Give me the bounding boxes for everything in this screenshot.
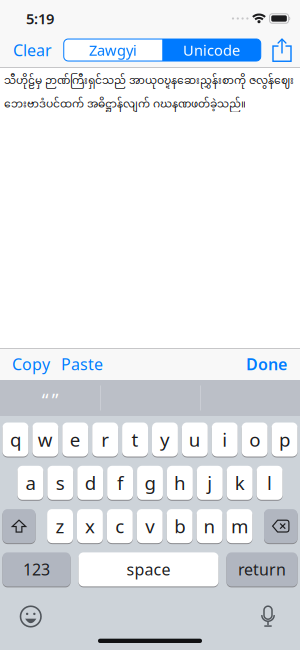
button[interactable]: d [77,465,103,500]
button[interactable]: z [47,509,73,544]
button[interactable]: Emoji [0,606,41,627]
button[interactable]: Copy [0,353,50,375]
button[interactable]: “ ” [0,380,100,416]
staticText: c [115,514,124,538]
staticText: m [231,514,248,538]
button[interactable]: f [107,465,133,500]
button[interactable]: k [227,465,253,500]
button[interactable]: p [272,422,297,457]
staticText: d [85,470,96,495]
button[interactable]: u [182,422,208,457]
staticText: o [249,427,260,452]
button[interactable]: o [242,422,268,457]
staticText: Done [246,353,287,375]
button[interactable]: s [47,465,73,500]
staticText: Clear [13,39,52,61]
staticText: Zawgyi [89,40,137,60]
button[interactable]: j [197,465,223,500]
button[interactable]: q [2,422,28,457]
button[interactable]: e [62,422,88,457]
button[interactable]: Clear [0,39,52,61]
button[interactable]: w [32,422,58,457]
staticText: f [117,470,123,495]
button[interactable]: l [257,465,282,500]
button[interactable]: Numbers [2,552,70,587]
button[interactable]: Unicode [162,39,261,61]
button[interactable]: space [78,552,218,587]
staticText: z [55,514,64,538]
button[interactable]: Done [246,353,300,375]
staticText: i [222,427,227,452]
button[interactable]: m [226,509,252,544]
staticText: Unicode [183,40,240,60]
button[interactable]: g [137,465,163,500]
staticText: u [189,427,201,452]
staticText: h [174,470,186,495]
button[interactable]: b [167,509,193,544]
button[interactable]: t [122,422,148,457]
button[interactable]: Paste [50,353,103,375]
staticText: x [85,514,95,538]
button[interactable]: Shift [2,509,35,544]
button[interactable]: y [152,422,178,457]
button[interactable]: Zawgyi [64,39,162,61]
button[interactable]: c [107,509,133,544]
button[interactable]: a [17,465,43,500]
staticText: 5:19 [26,9,54,28]
staticText: j [207,470,212,495]
button[interactable]: h [167,465,193,500]
button[interactable]: i [212,422,238,457]
button[interactable]: r [92,422,118,457]
staticText: v [145,514,154,538]
staticText: space [126,559,170,580]
button[interactable]: Delete [264,509,297,544]
staticText: k [235,470,245,495]
staticText: g [144,470,155,495]
staticText: Paste [61,353,103,375]
button[interactable]: Share [272,38,300,62]
staticText: p [279,427,290,452]
staticText: သီဟိုဠ်မှ ဉာဏ်ကြီးရှင်သည် အာယုဝဎ္ဍနဆေးညွ… [4,70,294,117]
button[interactable]: Dictation [261,606,300,627]
staticText: q [10,427,21,452]
staticText: Copy [12,353,50,375]
staticText: n [203,514,215,538]
staticText: y [160,427,170,452]
button[interactable]: v [137,509,163,544]
staticText: 123 [23,559,50,580]
staticText: a [25,470,35,495]
button[interactable]: n [197,509,222,544]
staticText: “ ” [42,387,59,412]
staticText: r [101,427,109,452]
staticText: t [131,427,138,452]
button[interactable]: return [226,552,297,587]
staticText: s [56,470,65,495]
staticText: l [267,470,272,495]
staticText: e [70,427,81,452]
staticText: b [174,514,185,538]
staticText: w [38,427,53,452]
button[interactable]: x [77,509,103,544]
staticText: return [238,559,286,580]
